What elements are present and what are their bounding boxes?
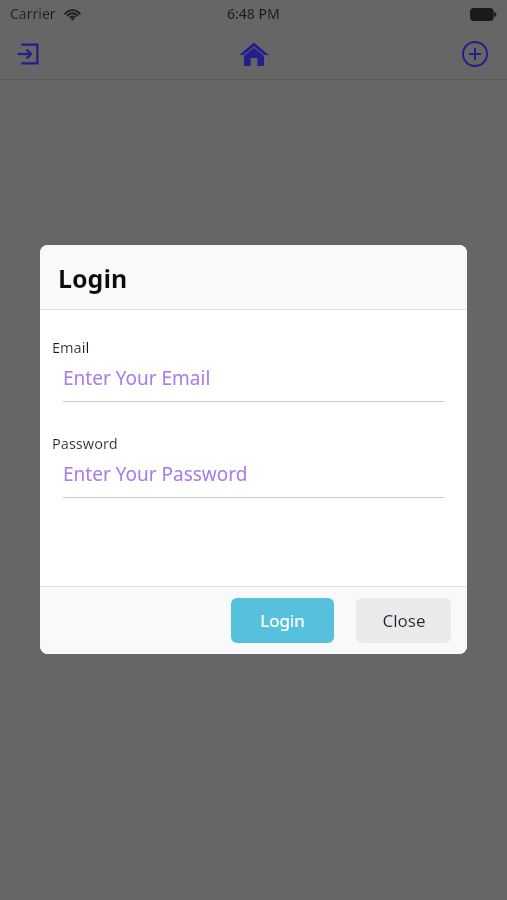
button[interactable]: Home [232,32,276,76]
staticText: Login [260,609,305,632]
staticText: Close [382,609,426,632]
staticText: Password [52,433,118,453]
staticText: 6:48 PM [227,4,280,23]
button[interactable]: Add [453,32,497,76]
button[interactable]: Login [6,32,50,76]
staticText: Enter Your Email [63,365,211,391]
button[interactable]: Enter Your Password [63,461,444,498]
button[interactable]: Enter Your Email [63,365,444,402]
staticText: Carrier [10,4,56,23]
button[interactable]: Login [231,598,334,643]
staticText: Enter Your Password [63,461,248,487]
staticText: Email [52,337,90,357]
staticText: Login [58,261,128,295]
button[interactable]: Close [356,598,451,643]
